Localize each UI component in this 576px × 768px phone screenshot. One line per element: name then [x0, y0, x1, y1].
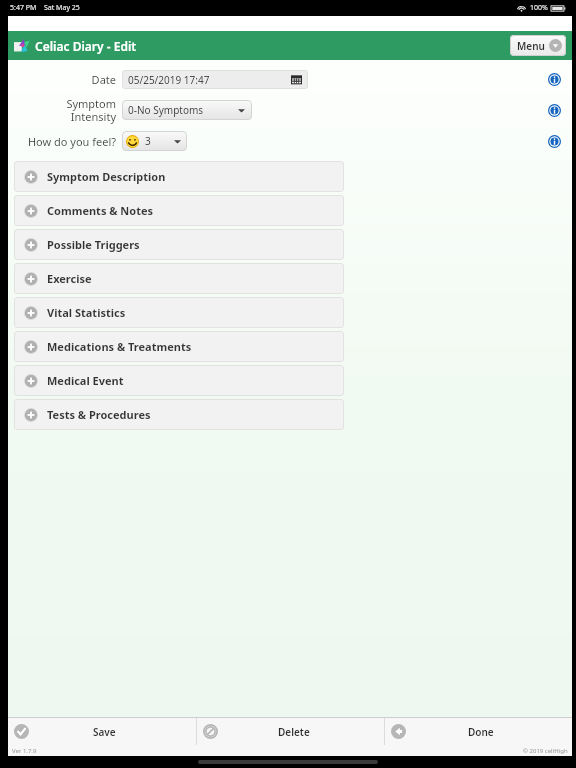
staticText: 05/25/2019 17:47: [128, 73, 210, 87]
button[interactable]: Info: [544, 69, 564, 89]
button[interactable]: Medical Event: [14, 365, 344, 396]
button[interactable]: Delete: [197, 718, 384, 745]
staticText: Sat May 25: [44, 3, 80, 13]
staticText: How do you feel?: [27, 134, 116, 149]
staticText: Possible Triggers: [47, 237, 140, 252]
staticText: Symptom Description: [47, 169, 166, 184]
staticText: Symptom Intensity: [66, 96, 116, 124]
staticText: Delete: [278, 725, 310, 739]
staticText: Medical Event: [47, 373, 124, 388]
staticText: Save: [93, 725, 116, 739]
staticText: Celiac Diary - Edit: [35, 38, 137, 54]
button[interactable]: Menu: [510, 35, 566, 56]
button[interactable]: Save: [8, 718, 196, 745]
staticText: 5:47 PM: [10, 3, 37, 13]
staticText: Comments & Notes: [47, 203, 154, 218]
staticText: Menu: [517, 39, 545, 53]
staticText: 100%: [530, 3, 548, 13]
staticText: Tests & Procedures: [47, 407, 151, 422]
button[interactable]: Done: [385, 718, 572, 745]
button[interactable]: Exercise: [14, 263, 344, 294]
button[interactable]: Medications & Treatments: [14, 331, 344, 362]
staticText: Done: [468, 725, 494, 739]
staticText: Medications & Treatments: [47, 339, 192, 354]
button[interactable]: Symptom Description: [14, 161, 344, 192]
staticText: Vital Statistics: [47, 305, 126, 320]
staticText: Date: [91, 72, 116, 87]
button[interactable]: 05/25/2019 17:47: [122, 70, 308, 89]
staticText: © 2019 cellHigh: [523, 747, 568, 755]
staticText: Ver 1.7.9: [12, 747, 37, 755]
button[interactable]: Info: [544, 100, 564, 120]
staticText: 3: [145, 134, 151, 148]
button[interactable]: Comments & Notes: [14, 195, 344, 226]
button[interactable]: Tests & Procedures: [14, 399, 344, 430]
staticText: Exercise: [47, 271, 92, 286]
button[interactable]: Info about how do you feel: [544, 131, 564, 151]
button[interactable]: Possible Triggers: [14, 229, 344, 260]
staticText: 0-No Symptoms: [128, 103, 204, 117]
button[interactable]: Vital Statistics: [14, 297, 344, 328]
button[interactable]: 3: [122, 131, 187, 151]
button[interactable]: 0-No Symptoms: [122, 100, 252, 120]
